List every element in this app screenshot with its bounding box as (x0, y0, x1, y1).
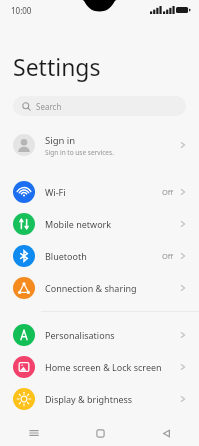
staticText: Settings (13, 51, 101, 82)
other: Bluetooth (13, 245, 35, 267)
staticText: Mobile network (45, 218, 180, 230)
staticText: Search (36, 101, 62, 112)
button[interactable]: Mobile network (0, 208, 199, 240)
button[interactable]: Home screen and Lock screen (0, 351, 199, 383)
other: Connection and sharing (13, 277, 35, 299)
button[interactable]: Wi-Fi (0, 176, 199, 208)
button[interactable]: Back (133, 420, 199, 446)
staticText: Off (162, 251, 174, 261)
staticText: Personalisations (45, 329, 180, 341)
staticText: Connection & sharing (45, 282, 180, 294)
other: Home screen and Lock screen (13, 356, 35, 378)
staticText: Sign in (45, 134, 76, 147)
other: Display and brightness (13, 388, 35, 410)
other: Wi-Fi (13, 181, 35, 203)
staticText: Display & brightness (45, 393, 180, 405)
button[interactable]: Display and brightness (0, 383, 199, 415)
staticText: Sign in to use services. (45, 148, 114, 157)
staticText: Off (162, 187, 174, 197)
staticText: 10:00 (11, 5, 32, 16)
button[interactable]: Personalisations (0, 319, 199, 351)
other: Personalisations (13, 324, 35, 346)
button[interactable]: Recent apps (0, 420, 67, 446)
button[interactable]: Search (13, 96, 186, 116)
button[interactable]: Home (67, 420, 133, 446)
button[interactable]: Sign in (0, 128, 199, 162)
staticText: Home screen & Lock screen (45, 361, 180, 373)
staticText: Bluetooth (45, 250, 162, 262)
staticText: Wi-Fi (45, 186, 162, 198)
button[interactable]: Bluetooth (0, 240, 199, 272)
button[interactable]: Connection and sharing (0, 272, 199, 304)
other: Mobile network (13, 213, 35, 235)
